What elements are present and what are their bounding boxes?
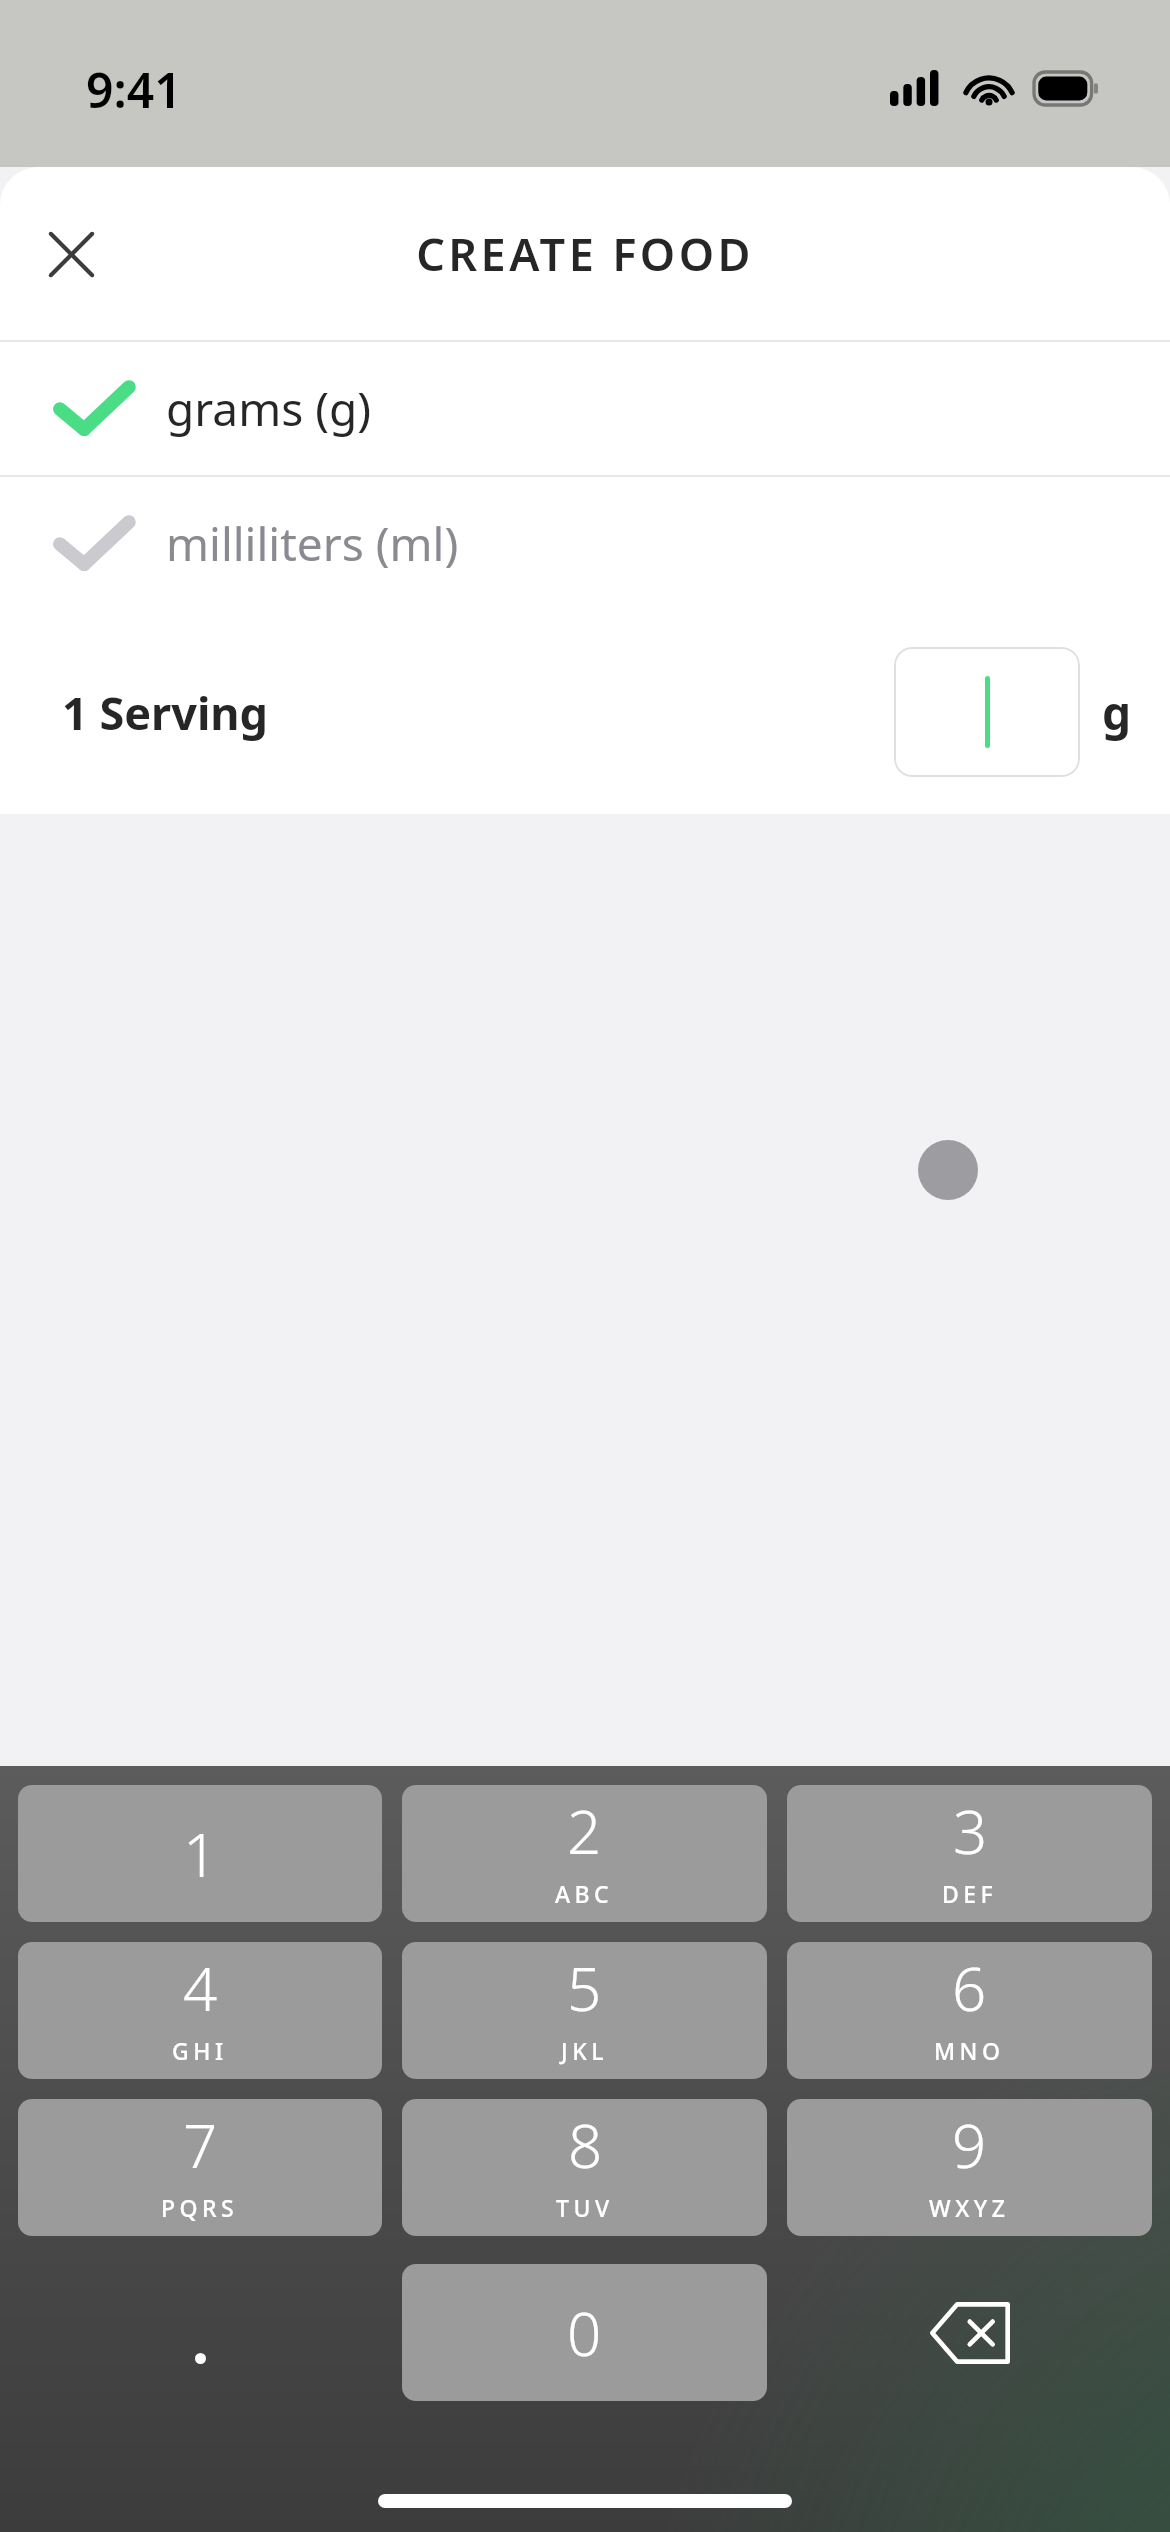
button[interactable]: milliliters (ml): [0, 477, 1170, 610]
button[interactable]: 6: [787, 1942, 1152, 2079]
staticText: TUV: [556, 2192, 614, 2223]
staticText: CREATE FOOD: [416, 223, 754, 284]
staticText: GHI: [172, 2035, 228, 2066]
button[interactable]: Backspace: [787, 2264, 1152, 2401]
staticText: 4: [183, 1947, 218, 2029]
staticText: 8: [568, 2104, 603, 2186]
button[interactable]: grams (g): [0, 342, 1170, 475]
button[interactable]: 5: [402, 1942, 767, 2079]
staticText: 9:41: [86, 57, 182, 122]
staticText: 9: [952, 2104, 987, 2186]
button[interactable]: 4: [18, 1942, 382, 2079]
staticText: 6: [952, 1947, 987, 2029]
staticText: 1: [183, 1813, 218, 1895]
button[interactable]: 3: [787, 1785, 1152, 1922]
staticText: milliliters (ml): [166, 512, 459, 575]
button[interactable]: Serving size input: [894, 647, 1080, 777]
button[interactable]: Indicator: [918, 1140, 978, 1200]
staticText: WXYZ: [929, 2192, 1010, 2223]
staticText: DEF: [942, 1878, 998, 1909]
button[interactable]: 9: [787, 2099, 1152, 2236]
staticText: ABC: [555, 1878, 614, 1909]
button[interactable]: Close: [24, 207, 118, 301]
staticText: 5: [567, 1947, 602, 2029]
staticText: 7: [183, 2104, 218, 2186]
button[interactable]: 7: [18, 2099, 382, 2236]
staticText: PQRS: [161, 2192, 239, 2223]
staticText: grams (g): [166, 377, 372, 440]
button[interactable]: 2: [402, 1785, 767, 1922]
staticText: 3: [953, 1790, 988, 1872]
staticText: 2: [567, 1790, 602, 1872]
staticText: MNO: [934, 2035, 1005, 2066]
button[interactable]: 8: [402, 2099, 767, 2236]
button[interactable]: 0: [402, 2264, 767, 2401]
staticText: 1 Serving: [62, 682, 269, 743]
staticText: JKL: [561, 2035, 608, 2066]
button[interactable]: Decimal point: [18, 2264, 382, 2401]
button[interactable]: 1: [18, 1785, 382, 1922]
staticText: 0: [567, 2292, 602, 2374]
staticText: g: [1102, 681, 1132, 744]
